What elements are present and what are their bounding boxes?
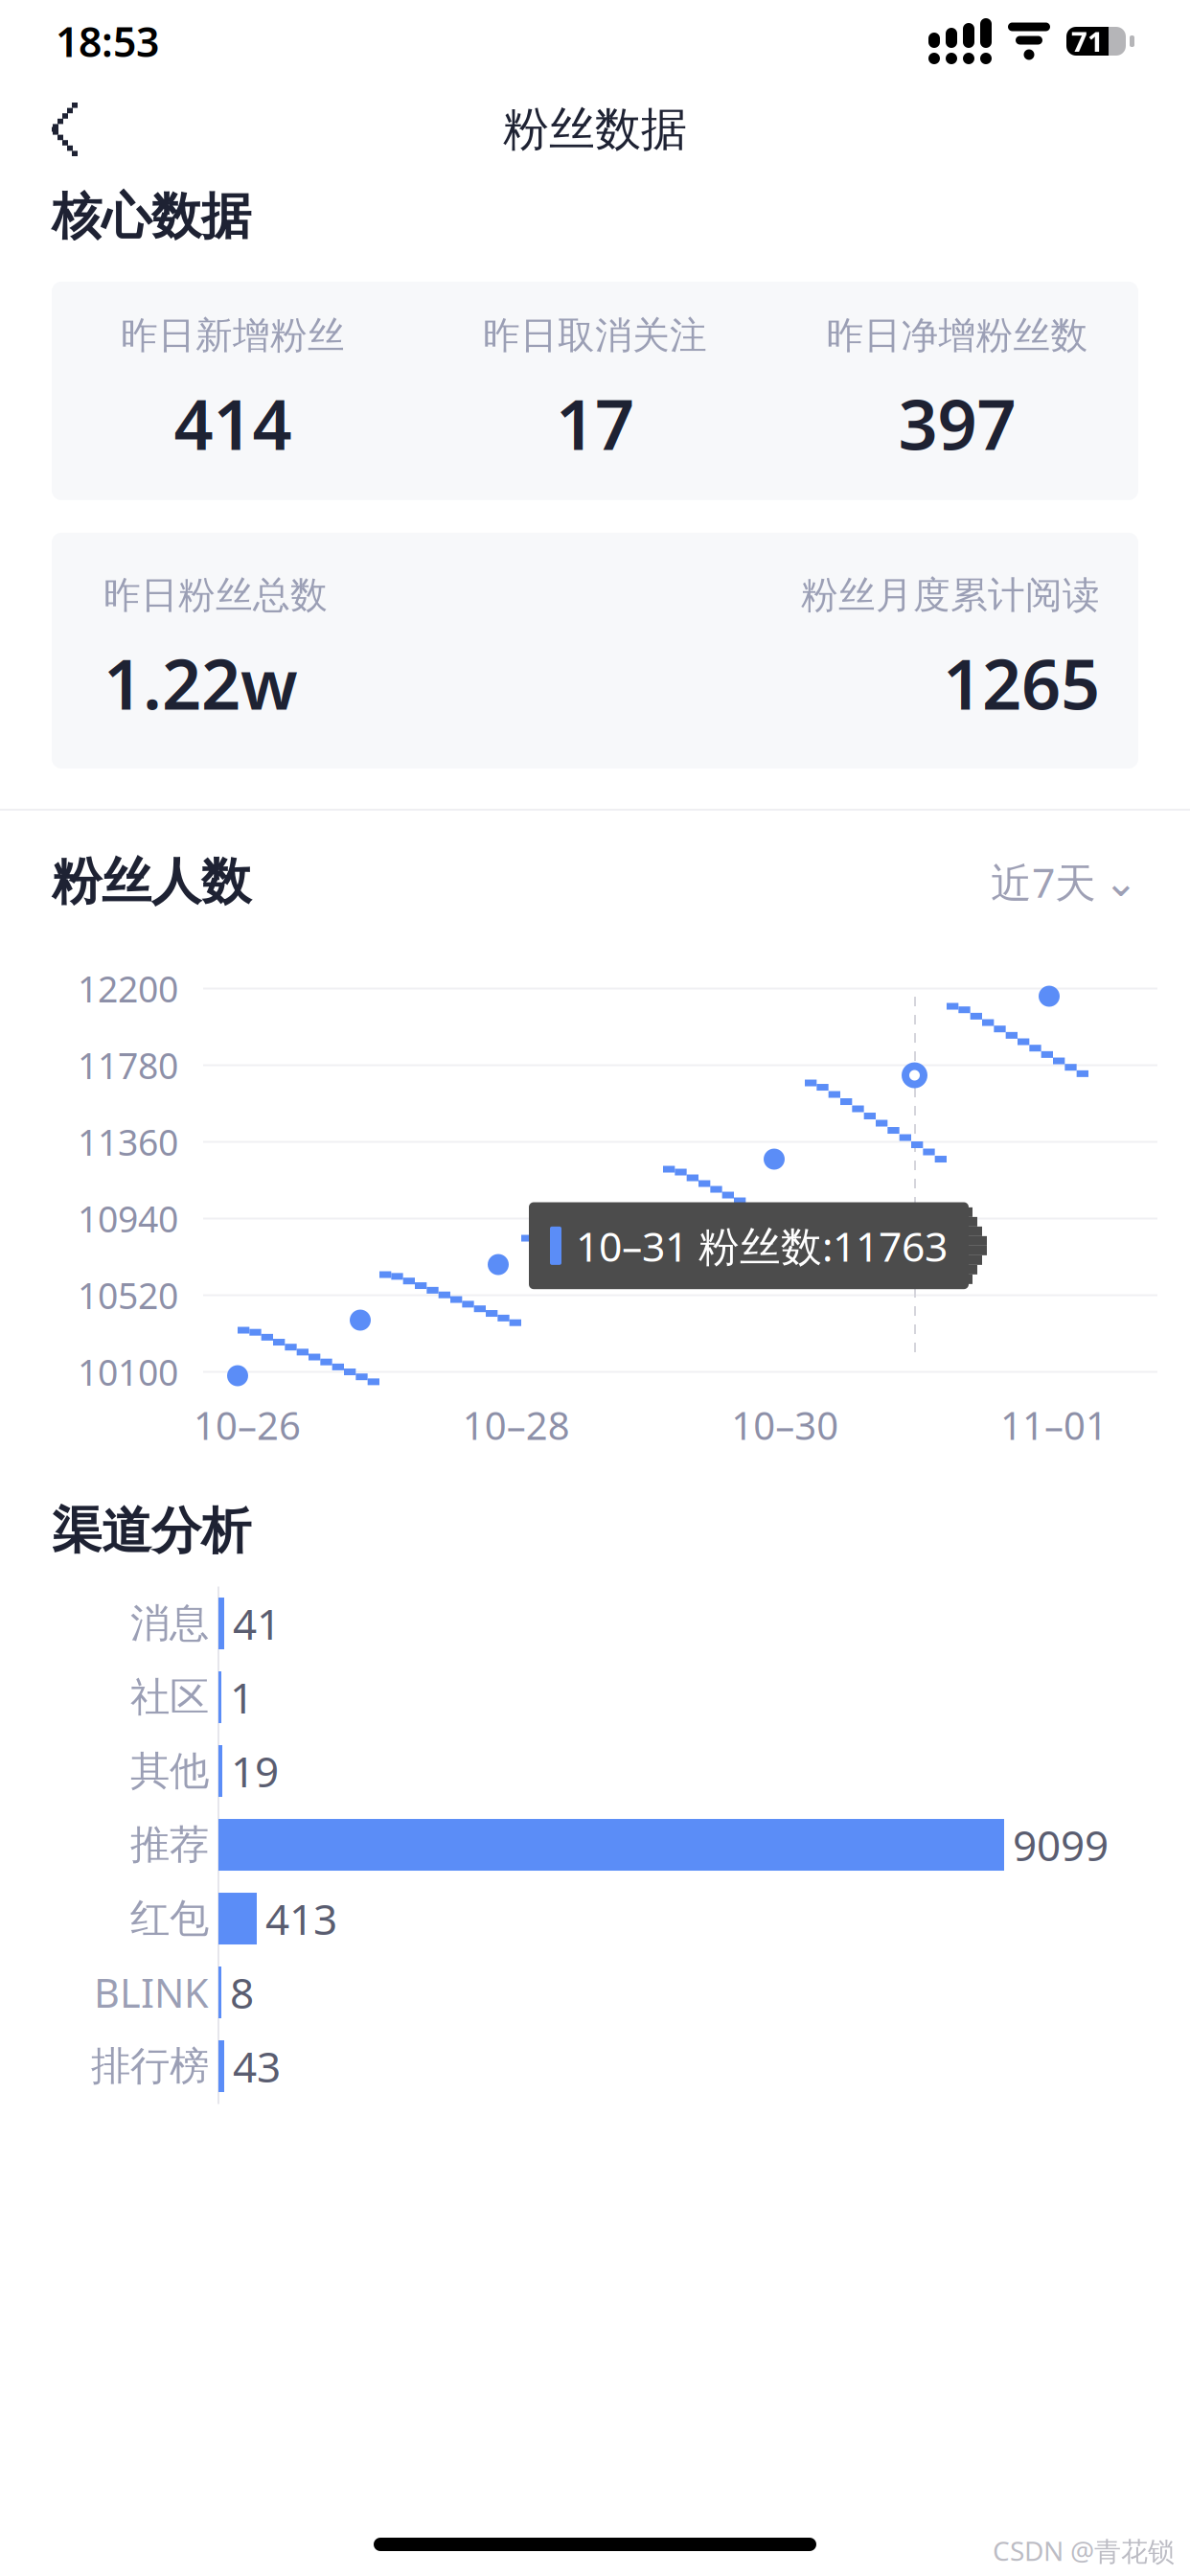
staticText: 1265 [943, 637, 1100, 729]
staticText: 粉丝人数 [52, 851, 251, 913]
staticText: 社区 [130, 1673, 209, 1722]
staticText: 11780 [78, 1041, 178, 1089]
staticText: 71 [1071, 23, 1104, 60]
staticText: 红包 [130, 1894, 209, 1943]
staticText: 10–30 [731, 1400, 839, 1451]
button[interactable]: 返回 [25, 88, 107, 171]
staticText: 8 [230, 1964, 254, 2020]
staticText: 消息 [130, 1599, 209, 1648]
staticText: 近7天 [991, 855, 1096, 909]
staticText: BLINK [94, 1966, 209, 2019]
staticText: 414 [174, 377, 292, 469]
staticText: 413 [265, 1891, 337, 1947]
staticText: 10520 [78, 1271, 178, 1319]
staticText: 排行榜 [91, 2042, 209, 2091]
button[interactable]: 近7天 [975, 843, 1138, 921]
staticText: 17 [556, 377, 634, 469]
staticText: 粉丝数据 [503, 101, 687, 158]
staticText: 41 [233, 1595, 281, 1651]
staticText: 10100 [78, 1348, 178, 1396]
staticText: 43 [233, 2038, 281, 2094]
staticText: 其他 [130, 1747, 209, 1795]
staticText: 1 [230, 1669, 254, 1725]
staticText: 10–31 粉丝数:11763 [576, 1219, 948, 1273]
staticText: 核心数据 [52, 186, 251, 247]
staticText: 18:53 [56, 14, 159, 68]
staticText: 粉丝月度累计阅读 [801, 572, 1100, 618]
staticText: 昨日粉丝总数 [103, 572, 328, 618]
staticText: 397 [898, 377, 1016, 469]
staticText: 昨日净增粉丝数 [826, 313, 1088, 358]
staticText: 12200 [78, 965, 178, 1012]
staticText: ⌄ [1104, 859, 1138, 905]
staticText: 10–26 [194, 1400, 301, 1451]
staticText: 昨日取消关注 [483, 313, 707, 358]
staticText: 昨日新增粉丝 [121, 313, 345, 358]
staticText: 10940 [78, 1195, 178, 1242]
staticText: 9099 [1013, 1817, 1109, 1873]
staticText: 11360 [78, 1118, 178, 1166]
staticText: 19 [231, 1743, 279, 1799]
staticText: 10–28 [462, 1400, 570, 1451]
staticText: 推荐 [130, 1820, 209, 1869]
staticText: 11–01 [1000, 1400, 1108, 1451]
staticText: 1.22w [103, 637, 298, 729]
staticText: CSDN @青花锁 [993, 2533, 1175, 2568]
staticText: 渠道分析 [52, 1500, 251, 1562]
